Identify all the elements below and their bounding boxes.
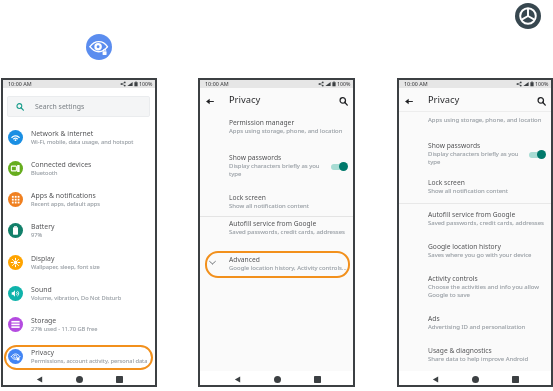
- button[interactable]: Network & internet: [2, 122, 156, 153]
- staticText: Permission manager: [229, 118, 295, 127]
- button[interactable]: Show passwords: [398, 137, 552, 164]
- button[interactable]: Google location history: [398, 238, 552, 257]
- button[interactable]: Ads: [398, 310, 552, 329]
- staticText: Sound: [31, 285, 52, 294]
- button[interactable]: Storage: [2, 309, 156, 340]
- button[interactable]: Recent apps: [310, 372, 324, 386]
- staticText: Volume, vibration, Do Not Disturb: [31, 294, 122, 302]
- button[interactable]: Sound: [2, 278, 156, 309]
- staticText: Activity controls: [428, 274, 478, 283]
- button[interactable]: Back: [428, 372, 442, 386]
- button[interactable]: Lock screen: [398, 174, 552, 193]
- staticText: Privacy: [31, 348, 54, 357]
- staticText: Show all notification content: [428, 187, 508, 195]
- staticText: Battery: [31, 222, 55, 231]
- staticText: Share data to help improve Android: [428, 355, 529, 363]
- staticText: Advertising ID and personalization: [428, 323, 526, 331]
- staticText: 10:00 AM: [205, 80, 229, 87]
- staticText: 10:00 AM: [8, 80, 32, 87]
- button[interactable]: Advanced: [199, 251, 354, 270]
- button[interactable]: Display: [2, 247, 156, 278]
- staticText: Lock screen: [229, 193, 266, 202]
- button[interactable]: Recent apps: [508, 372, 522, 386]
- staticText: Wallpaper, sleep, font size: [31, 263, 100, 271]
- staticText: type: [428, 158, 441, 166]
- staticText: Google to save: [428, 291, 470, 299]
- staticText: Connected devices: [31, 160, 92, 169]
- staticText: Usage & diagnostics: [428, 346, 492, 355]
- staticText: Network & internet: [31, 129, 94, 138]
- button[interactable]: Autofill service from Google: [199, 215, 354, 234]
- button[interactable]: Privacy: [86, 34, 112, 60]
- staticText: Storage: [31, 316, 57, 325]
- staticText: Autofill service from Google: [229, 219, 317, 228]
- staticText: 100%: [535, 80, 549, 87]
- staticText: Display characters briefly as you: [428, 150, 519, 158]
- button[interactable]: Connected devices: [2, 153, 156, 184]
- button[interactable]: Search: [533, 93, 549, 109]
- staticText: Permissions, account activity, personal …: [31, 357, 148, 365]
- staticText: Privacy: [229, 93, 261, 106]
- staticText: 100%: [337, 80, 351, 87]
- staticText: Bluetooth: [31, 169, 58, 177]
- staticText: Ads: [428, 314, 440, 323]
- staticText: Saves where you go with your device: [428, 251, 532, 259]
- staticText: Advanced: [229, 255, 260, 264]
- button[interactable]: Search: [335, 93, 351, 109]
- staticText: Recent apps, default apps: [31, 200, 100, 208]
- button[interactable]: Home: [468, 372, 482, 386]
- button[interactable]: Back: [32, 372, 46, 386]
- staticText: Display: [31, 254, 55, 263]
- staticText: Apps & notifications: [31, 191, 96, 200]
- staticText: Saved passwords, credit cards, addresses: [428, 219, 544, 227]
- staticText: 27% used - 11.70 GB free: [31, 325, 98, 333]
- button[interactable]: Apps using storage, phone, and location: [398, 112, 552, 126]
- staticText: Lock screen: [428, 178, 465, 187]
- staticText: Search settings: [35, 102, 85, 111]
- staticText: Wi-Fi, mobile, data usage, and hotspot: [31, 138, 134, 146]
- button[interactable]: Home: [270, 372, 284, 386]
- button[interactable]: Back: [202, 93, 218, 109]
- button[interactable]: Autofill service from Google: [398, 206, 552, 225]
- button[interactable]: Recent apps: [112, 372, 126, 386]
- staticText: 100%: [139, 80, 153, 87]
- staticText: Privacy: [428, 93, 460, 106]
- button[interactable]: Privacy: [2, 341, 156, 372]
- staticText: Apps using storage, phone, and location: [428, 116, 542, 124]
- staticText: Apps using storage, phone, and location: [229, 127, 343, 135]
- button[interactable]: Lock screen: [199, 189, 354, 208]
- staticText: Google location history: [428, 242, 501, 251]
- staticText: 97%: [31, 231, 43, 239]
- staticText: Show all notification content: [229, 202, 309, 210]
- staticText: Autofill service from Google: [428, 210, 516, 219]
- button[interactable]: Permission manager: [199, 114, 354, 133]
- button[interactable]: Apps & notifications: [2, 184, 156, 215]
- button[interactable]: Battery: [2, 215, 156, 246]
- staticText: Show passwords: [428, 141, 481, 150]
- button[interactable]: Back: [401, 93, 417, 109]
- button[interactable]: Show passwords: [199, 149, 354, 176]
- staticText: type: [229, 170, 242, 178]
- staticText: Saved passwords, credit cards, addresses: [229, 228, 345, 236]
- button[interactable]: Back: [230, 372, 244, 386]
- button[interactable]: Usage & diagnostics: [398, 342, 552, 361]
- staticText: 10:00 AM: [404, 80, 428, 87]
- staticText: Show passwords: [229, 153, 282, 162]
- staticText: Choose the activities and info you allow: [428, 283, 539, 291]
- staticText: Display characters briefly as you: [229, 162, 320, 170]
- button[interactable]: Home: [72, 372, 86, 386]
- button[interactable]: App logo: [515, 3, 541, 29]
- button[interactable]: Search settings: [7, 96, 150, 117]
- staticText: Google location history, Activity contro…: [229, 264, 347, 272]
- button[interactable]: Activity controls: [398, 270, 552, 297]
